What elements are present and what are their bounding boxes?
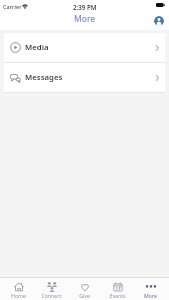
button[interactable]: Home: [2, 278, 35, 300]
staticText: Give: [79, 292, 90, 299]
staticText: Connect: [41, 292, 62, 299]
staticText: Messages: [25, 72, 63, 83]
button[interactable]: Give: [68, 278, 101, 300]
staticText: Home: [11, 292, 26, 299]
staticText: Events: [109, 292, 126, 299]
button[interactable]: Events: [101, 278, 134, 300]
button[interactable]: Profile: [154, 16, 164, 26]
staticText: Carrier: [3, 3, 22, 11]
staticText: More: [74, 13, 96, 25]
button[interactable]: Media: [4, 33, 165, 62]
button[interactable]: More: [134, 278, 167, 300]
staticText: 2:39 PM: [73, 3, 97, 11]
button[interactable]: Messages: [4, 63, 165, 92]
staticText: Media: [25, 42, 49, 53]
button[interactable]: Connect: [35, 278, 68, 300]
staticText: More: [144, 292, 157, 299]
